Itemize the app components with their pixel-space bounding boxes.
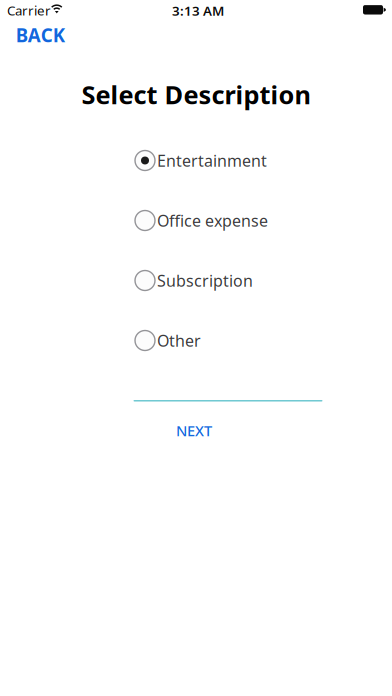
staticText: Entertainment <box>157 150 267 171</box>
button[interactable]: Office expense <box>135 202 325 238</box>
button[interactable]: Other <box>135 322 325 358</box>
button[interactable]: Subscription <box>135 262 325 298</box>
staticText: Select Description <box>81 78 310 111</box>
staticText: BACK <box>16 23 65 47</box>
staticText: Carrier <box>7 1 51 19</box>
staticText: 3:13 AM <box>172 2 224 19</box>
button[interactable]: NEXT <box>139 419 249 441</box>
button[interactable]: BACK <box>16 21 76 49</box>
button[interactable]: Entertainment <box>135 142 325 178</box>
staticText: Subscription <box>157 270 253 291</box>
staticText: Office expense <box>157 210 268 231</box>
staticText: Other <box>157 330 201 351</box>
staticText: NEXT <box>176 421 212 440</box>
